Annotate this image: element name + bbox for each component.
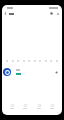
button[interactable]: Back (3, 11, 8, 16)
button[interactable]: Tab 1 (20, 103, 30, 114)
button[interactable]: Tab 2 (34, 103, 44, 114)
button[interactable]: Tool 5 (33, 59, 36, 62)
button[interactable]: Tool 0 (5, 59, 8, 62)
button[interactable]: Tab 0 (7, 103, 17, 114)
button[interactable]: More options (56, 12, 59, 15)
button[interactable]: Tool 9 (55, 59, 58, 62)
button[interactable]: Tab 3 (47, 103, 57, 114)
button[interactable]: Tool 8 (49, 59, 52, 62)
button[interactable]: Attach (54, 70, 58, 74)
button[interactable]: Profile (3, 68, 11, 76)
button[interactable]: Tool 7 (44, 59, 47, 62)
button[interactable]: Tool 3 (22, 59, 25, 62)
button[interactable]: Tool 6 (38, 59, 41, 62)
button[interactable]: Tool 4 (27, 59, 30, 62)
button[interactable]: Search (50, 12, 53, 15)
button[interactable]: Tool 1 (11, 59, 14, 62)
button[interactable]: Tool 2 (16, 59, 19, 62)
